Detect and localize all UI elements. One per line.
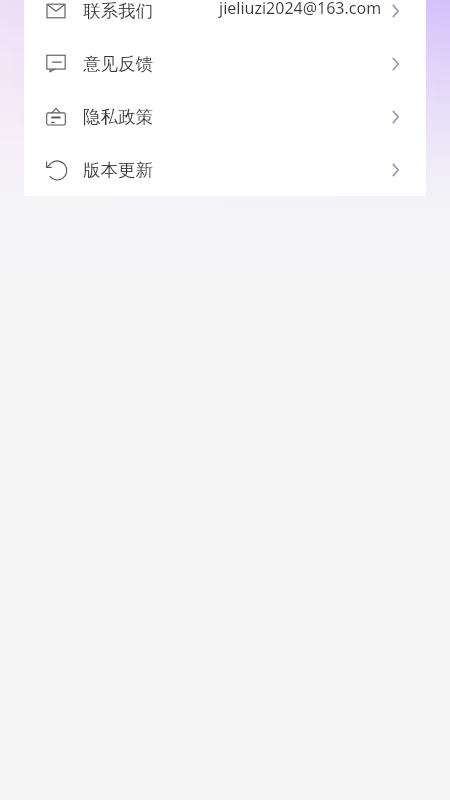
button[interactable]: 隐私政策	[24, 90, 426, 143]
button[interactable]: 意见反馈	[24, 37, 426, 90]
button[interactable]: 联系我们	[24, 0, 426, 37]
staticText: 联系我们	[83, 0, 153, 22]
other: More	[392, 57, 399, 71]
other: More	[392, 110, 399, 124]
staticText: jieliuzi2024@163.com	[219, 0, 382, 19]
button[interactable]: 版本更新	[24, 143, 426, 196]
other: More	[392, 4, 399, 18]
staticText: 隐私政策	[83, 106, 153, 128]
other: More	[392, 163, 399, 177]
staticText: 意见反馈	[83, 53, 153, 75]
staticText: 版本更新	[83, 159, 153, 181]
